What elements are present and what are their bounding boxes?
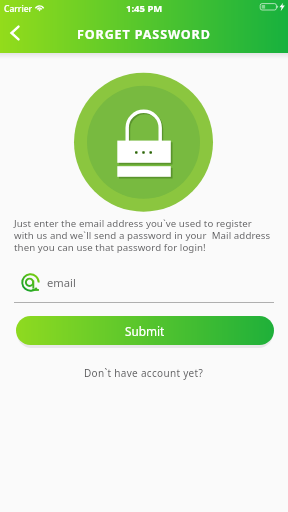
staticText: Just enter the email address you`ve used… bbox=[14, 217, 272, 254]
staticText: Don`t have account yet? bbox=[84, 366, 204, 380]
staticText: Carrier bbox=[4, 3, 33, 15]
button[interactable]: Don`t have account yet? bbox=[0, 364, 288, 382]
button[interactable]: Back bbox=[1, 19, 29, 47]
staticText: FORGET PASSWORD bbox=[77, 26, 211, 43]
staticText: Submit bbox=[125, 323, 165, 339]
staticText: 1:45 PM bbox=[126, 2, 163, 15]
staticText: email bbox=[47, 275, 76, 290]
button[interactable]: Submit bbox=[16, 316, 274, 345]
button[interactable]: email bbox=[14, 270, 274, 294]
